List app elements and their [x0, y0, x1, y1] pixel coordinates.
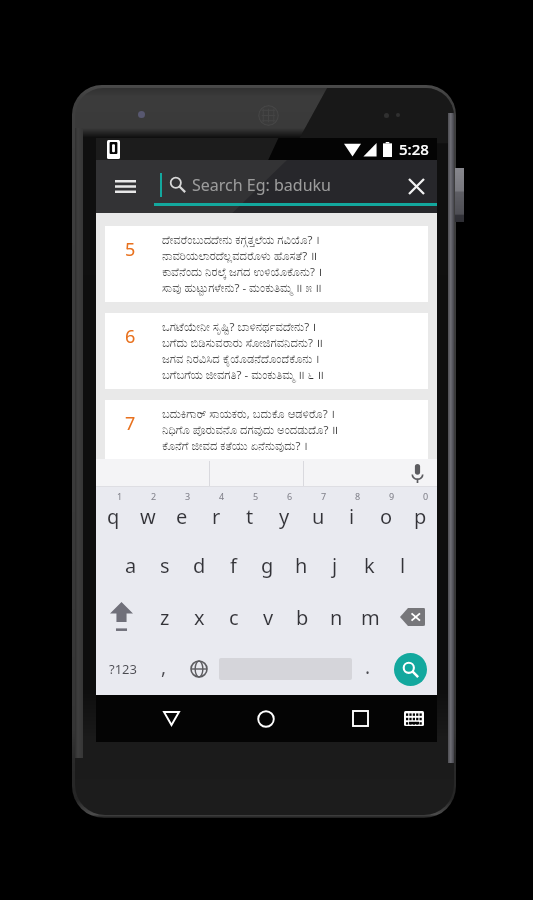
- staticText: h: [295, 552, 308, 579]
- button[interactable]: c: [217, 591, 251, 643]
- button[interactable]: .: [352, 643, 384, 695]
- staticText: e: [176, 503, 188, 530]
- button[interactable]: Backspace: [387, 591, 437, 643]
- button[interactable]: s: [148, 539, 182, 591]
- staticText: ಕಾವೆನೆಂದು ನಿರಲ್ಕೆ ಜಗದ ಉಳಿಯೊಕೊನು? ।: [162, 264, 323, 280]
- button[interactable]: 7: [105, 400, 428, 459]
- button[interactable]: 6: [105, 313, 428, 389]
- staticText: ಕೊನೆಗೆ ಜೀವದ ಕತೆಯು ಏನೆನುವುದು? ।: [162, 438, 308, 453]
- staticText: l: [400, 552, 406, 579]
- staticText: 5: [253, 490, 259, 502]
- button[interactable]: ?123: [96, 643, 150, 695]
- staticText: ನಾವರಿಯಲಾರದೆಲ್ಲವದರೊಳು ಹೊಸತೆ? ॥: [162, 248, 318, 264]
- button[interactable]: l: [386, 539, 420, 591]
- staticText: ,: [161, 654, 167, 680]
- button[interactable]: 1: [96, 487, 131, 539]
- button[interactable]: k: [352, 539, 386, 591]
- staticText: 7: [125, 411, 136, 436]
- staticText: k: [364, 552, 375, 579]
- button[interactable]: [210, 459, 303, 487]
- button[interactable]: 0: [403, 487, 437, 539]
- staticText: 9: [389, 490, 395, 502]
- button[interactable]: a: [113, 539, 148, 591]
- staticText: y: [279, 503, 290, 530]
- staticText: v: [263, 604, 274, 631]
- staticText: 8: [355, 490, 361, 502]
- button[interactable]: Voice input: [397, 459, 437, 487]
- staticText: n: [330, 604, 343, 631]
- staticText: t: [246, 503, 254, 530]
- staticText: Search Eg: baduku: [192, 174, 331, 196]
- button[interactable]: ,: [150, 643, 178, 695]
- staticText: u: [312, 503, 325, 530]
- staticText: 5: [125, 237, 136, 262]
- button[interactable]: j: [318, 539, 352, 591]
- button[interactable]: b: [285, 591, 319, 643]
- staticText: i: [349, 503, 355, 530]
- button[interactable]: x: [182, 591, 217, 643]
- staticText: w: [140, 503, 156, 530]
- staticText: p: [414, 503, 427, 530]
- staticText: ಬದುಕಿಗಾರ್ ಸಾಯಕರು, ಬದುಕೊ ಆಡಳಿರೊ? ।: [162, 406, 336, 422]
- button[interactable]: 8: [335, 487, 369, 539]
- staticText: ಒಗಟೆಯೇನೀ ಸೃಷ್ಟಿ? ಬಾಳಿನರ್ಥವದೇನು? ।: [162, 319, 317, 335]
- staticText: q: [107, 503, 120, 530]
- button[interactable]: 2: [131, 487, 165, 539]
- staticText: m: [361, 604, 380, 631]
- staticText: g: [261, 552, 274, 579]
- button[interactable]: [304, 459, 397, 487]
- staticText: ಜಗವ ನಿರವಿಸಿದ ಕೈಯೊಡನೆದೊಂದೆಕೊನು ।: [162, 351, 320, 367]
- staticText: j: [332, 552, 338, 579]
- staticText: ?123: [109, 660, 137, 678]
- staticText: ನಿಧಿಗೊ ಪೊರುವನೊ ದಗವುದು ಅಂದಡುದೊ? ॥: [162, 422, 339, 438]
- button[interactable]: Shift: [96, 591, 147, 643]
- button[interactable]: Home: [242, 695, 290, 742]
- staticText: r: [212, 503, 221, 530]
- staticText: ಸಾವು ಹುಟ್ಟುಗಳೇನು? - ಮಂಕುತಿಮ್ಮ ॥ ೫ ॥: [162, 280, 322, 296]
- button[interactable]: Change language: [178, 643, 219, 695]
- button[interactable]: [96, 459, 209, 487]
- staticText: o: [380, 503, 393, 530]
- staticText: x: [194, 604, 205, 631]
- button[interactable]: d: [182, 539, 216, 591]
- button[interactable]: 5: [105, 226, 428, 302]
- staticText: ಬಗೆದು ಬಿಡಿಸುವರಾರು ಸೋಜಿಗವನಿದನು? ॥: [162, 335, 323, 351]
- staticText: 2: [151, 490, 157, 502]
- button[interactable]: 3: [165, 487, 199, 539]
- staticText: f: [230, 552, 237, 579]
- button[interactable]: Clear search: [395, 160, 437, 213]
- button[interactable]: f: [216, 539, 250, 591]
- staticText: z: [160, 604, 170, 631]
- staticText: 6: [287, 490, 293, 502]
- button[interactable]: Search: [394, 653, 427, 686]
- staticText: ದೇವರೆಂಬುದದೇನು ಕಗ್ಗತ್ತಲೆಯ ಗವಿಯೊ? ।: [162, 232, 320, 248]
- button[interactable]: n: [319, 591, 353, 643]
- staticText: a: [125, 552, 137, 579]
- staticText: .: [365, 654, 371, 680]
- staticText: ಬಗೆಬಗೆಯ ಜೀವಗತಿ? - ಮಂಕುತಿಮ್ಮ ॥ ೬ ॥: [162, 367, 324, 383]
- staticText: c: [229, 604, 239, 631]
- button[interactable]: v: [251, 591, 285, 643]
- button[interactable]: 4: [199, 487, 233, 539]
- button[interactable]: m: [353, 591, 387, 643]
- button[interactable]: 6: [267, 487, 301, 539]
- button[interactable]: 9: [369, 487, 403, 539]
- button[interactable]: Back: [147, 695, 195, 742]
- staticText: 1: [117, 490, 123, 502]
- staticText: 0: [423, 490, 429, 502]
- staticText: 5:28: [399, 139, 429, 159]
- staticText: 3: [185, 490, 191, 502]
- staticText: s: [160, 552, 170, 579]
- button[interactable]: 5: [233, 487, 267, 539]
- button[interactable]: h: [284, 539, 318, 591]
- staticText: b: [296, 604, 309, 631]
- button[interactable]: Menu: [96, 160, 154, 213]
- staticText: 4: [219, 490, 225, 502]
- button[interactable]: g: [250, 539, 284, 591]
- button[interactable]: 7: [301, 487, 335, 539]
- button[interactable]: z: [147, 591, 182, 643]
- button[interactable]: Recent apps: [336, 695, 384, 742]
- button[interactable]: Switch keyboard: [393, 695, 435, 742]
- staticText: 6: [125, 324, 136, 349]
